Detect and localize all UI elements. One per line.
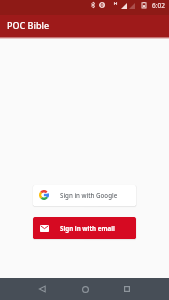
button[interactable]: Recent apps xyxy=(106,278,148,300)
staticText: POC Bible xyxy=(7,19,50,31)
staticText: Sign in with email xyxy=(60,224,115,232)
staticText: Sign in with Google xyxy=(60,191,118,199)
button[interactable]: Home xyxy=(64,278,106,300)
staticText: 6:02 xyxy=(152,1,165,10)
button[interactable]: Back xyxy=(21,278,64,300)
button[interactable]: Sign in with email xyxy=(33,217,136,239)
button[interactable]: Sign in with Google xyxy=(33,185,136,206)
